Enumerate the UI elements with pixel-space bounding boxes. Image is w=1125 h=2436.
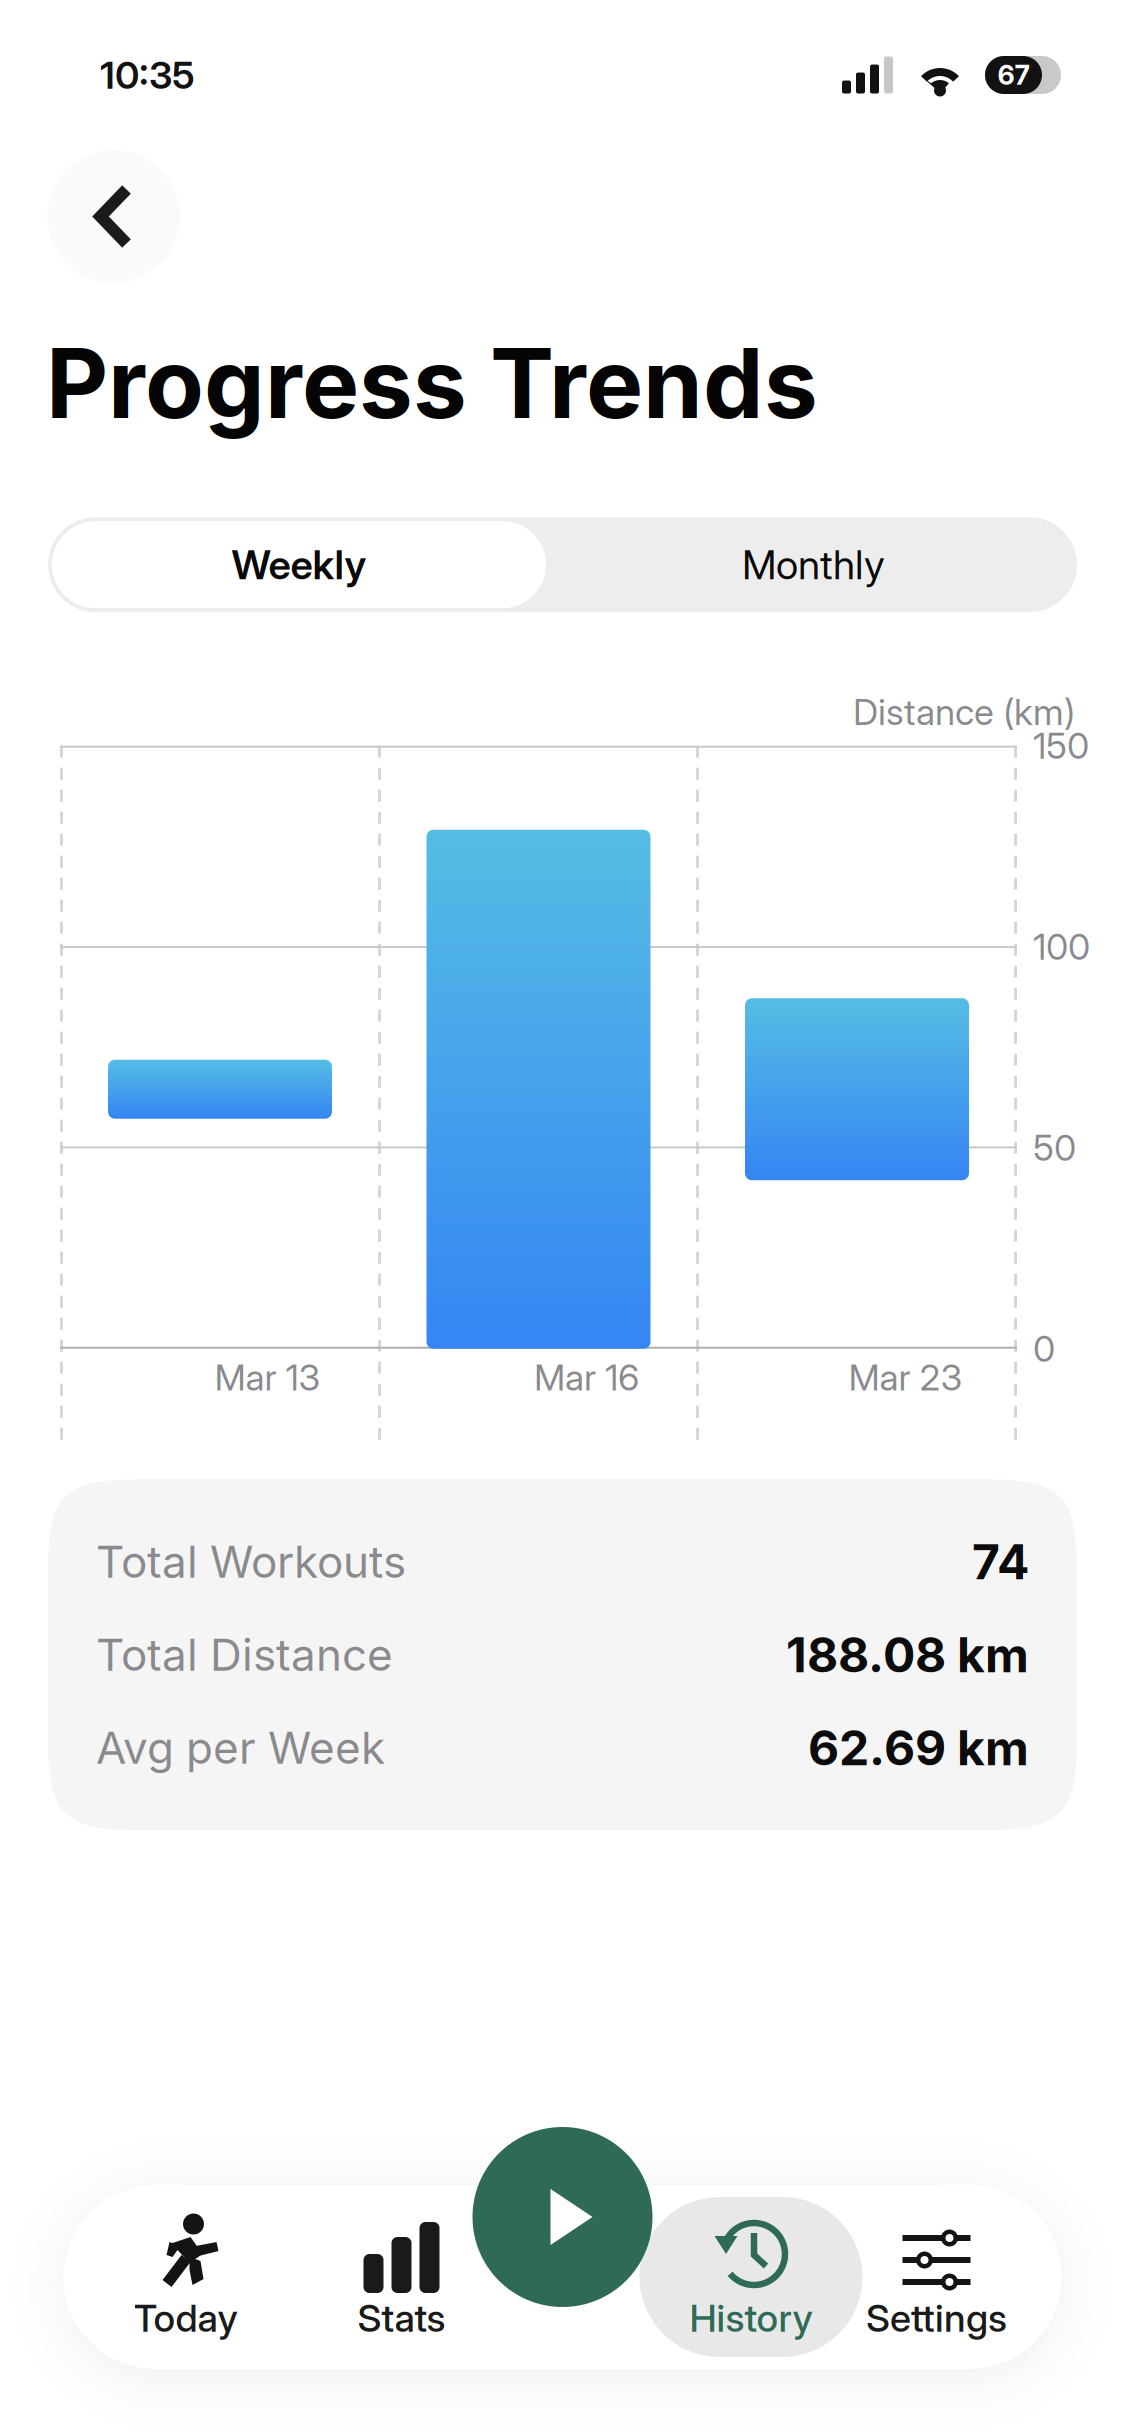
button[interactable]: History [639, 2197, 862, 2357]
staticText: 100 [1033, 925, 1090, 968]
staticText: Settings [866, 2295, 1007, 2341]
button[interactable]: Start workout [472, 2127, 652, 2307]
staticText: 10:35 [100, 52, 195, 98]
button[interactable]: Today [91, 2197, 279, 2357]
staticText: Avg per Week [96, 1721, 385, 1774]
staticText: Monthly [742, 540, 885, 589]
staticText: Mar 23 [848, 1356, 962, 1399]
staticText: 50 [1033, 1126, 1076, 1169]
staticText: Mar 16 [534, 1356, 639, 1399]
staticText: 150 [1033, 724, 1089, 767]
staticText: Stats [357, 2295, 445, 2341]
button[interactable]: Weekly [48, 517, 550, 612]
staticText: Total Distance [96, 1628, 393, 1681]
staticText: Mar 13 [214, 1356, 320, 1399]
staticText: 0 [1033, 1327, 1055, 1370]
staticText: Total Workouts [96, 1535, 406, 1588]
staticText: 188.08 km [786, 1626, 1029, 1684]
button[interactable]: Back [47, 150, 180, 283]
staticText: 67 [997, 59, 1029, 91]
staticText: History [689, 2295, 812, 2341]
button[interactable]: Settings [862, 2197, 1010, 2357]
staticText: 74 [972, 1533, 1029, 1591]
staticText: Progress Trends [46, 325, 818, 441]
staticText: Weekly [231, 540, 366, 589]
staticText: 62.69 km [808, 1719, 1029, 1777]
button[interactable]: Monthly [550, 517, 1077, 612]
staticText: Today [133, 2295, 237, 2341]
staticText: Distance (km) [853, 690, 1075, 734]
button[interactable]: Stats [307, 2197, 495, 2357]
